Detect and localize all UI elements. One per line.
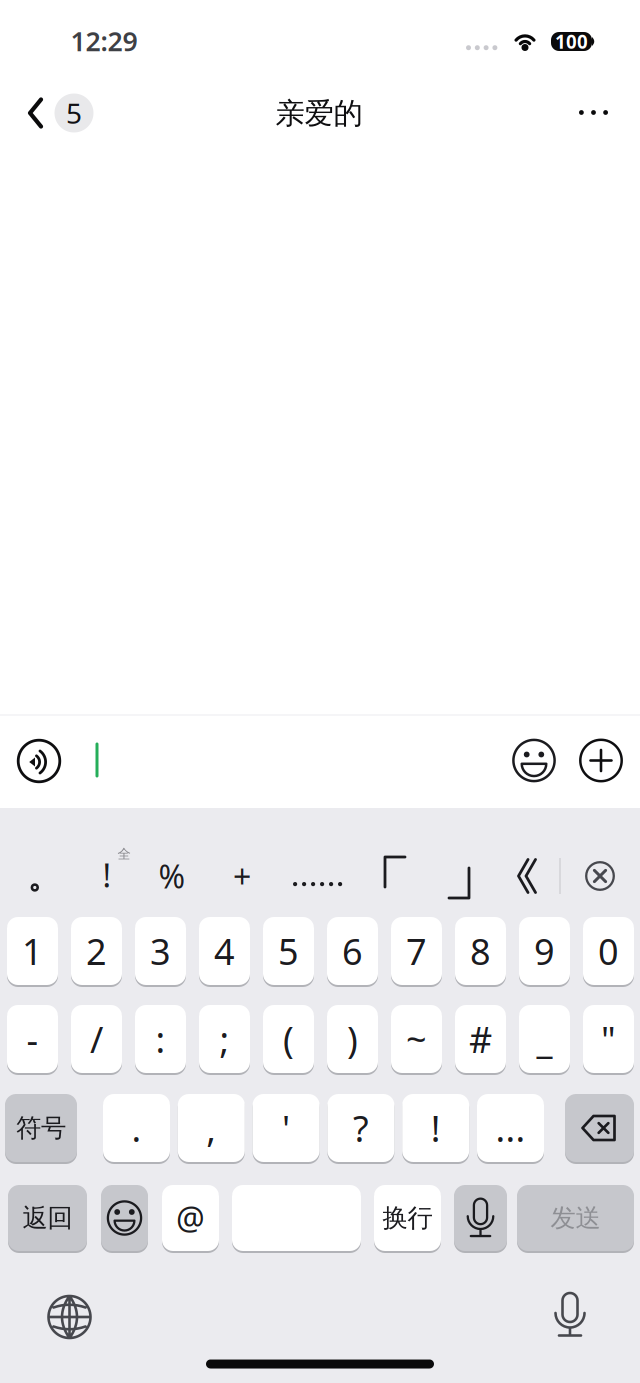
staticText: 12:29 [70,23,137,59]
button[interactable]: . [103,1094,170,1162]
staticText: ; [219,1015,229,1063]
button[interactable]: Back [26,93,93,132]
staticText: ~ [406,1015,427,1063]
button[interactable]: 2 [71,917,122,985]
staticText: ! [431,1104,441,1152]
button[interactable]: 1 [7,917,58,985]
staticText: 6 [342,927,363,975]
button[interactable]: 6 [327,917,378,985]
staticText: 1 [22,927,43,975]
button[interactable]: 。 [29,881,41,893]
staticText: / [90,1015,103,1063]
button[interactable]: " [583,1005,634,1073]
button[interactable]: 《 [516,858,538,894]
staticText: 9 [534,927,555,975]
staticText: % [158,855,185,897]
staticText: 8 [470,927,491,975]
staticText: 7 [406,927,427,975]
staticText: ' [282,1104,290,1152]
button[interactable]: ) [327,1005,378,1073]
staticText: @ [176,1197,205,1239]
button[interactable]: ? [327,1094,394,1162]
staticText: 2 [86,927,107,975]
button[interactable]: Voice input [16,738,62,784]
button[interactable]: Dismiss [584,860,616,892]
staticText: ( [283,1015,294,1063]
staticText: 5 [66,94,82,132]
button[interactable]: + [233,855,251,897]
button[interactable]: Delete [565,1094,634,1162]
staticText: . [131,1104,141,1152]
staticText: 换行 [382,1202,432,1233]
button[interactable]: ! [102,854,111,896]
button[interactable]: 符号 [5,1094,77,1162]
button[interactable]: Emoji [511,738,557,783]
button[interactable]: ' [253,1094,320,1162]
staticText: ) [347,1015,358,1063]
staticText: 5 [278,927,299,975]
staticText: ? [353,1104,369,1152]
button[interactable]: Dictate [454,1185,507,1251]
staticText: : [155,1015,165,1063]
staticText: 100 [555,29,588,54]
staticText: + [233,855,251,897]
button[interactable]: 4 [199,917,250,985]
button[interactable]: ... [477,1094,544,1162]
button[interactable]: 返回 [8,1185,87,1251]
staticText: , [206,1104,216,1152]
button[interactable]: Space [232,1185,361,1251]
staticText: 符号 [16,1112,66,1143]
staticText: 0 [598,927,619,975]
button[interactable]: - [7,1005,58,1073]
button[interactable]: 发送 [517,1185,634,1251]
button[interactable]: 7 [391,917,442,985]
button[interactable]: _ [519,1005,570,1073]
button[interactable]: # [455,1005,506,1073]
button[interactable]: …… [293,880,343,888]
staticText: ... [495,1104,525,1152]
button[interactable]: 8 [455,917,506,985]
button[interactable]: : [135,1005,186,1073]
staticText: _ [536,1015,552,1063]
button[interactable]: More actions [578,737,624,783]
button[interactable]: 「 [383,855,407,889]
button[interactable]: ! [402,1094,469,1162]
staticText: 全 [117,846,130,862]
button[interactable]: 换行 [374,1185,441,1251]
button[interactable]: Emoji [101,1185,148,1251]
button[interactable]: Next keyboard [46,1294,92,1340]
button[interactable]: 5 [263,917,314,985]
button[interactable]: ~ [391,1005,442,1073]
button[interactable]: More [579,107,609,117]
button[interactable]: ; [199,1005,250,1073]
button[interactable]: Dictation [553,1291,587,1339]
staticText: 3 [150,927,171,975]
button[interactable]: 」 [447,866,471,900]
button[interactable]: 3 [135,917,186,985]
staticText: 亲爱的 [275,95,362,131]
button[interactable]: / [71,1005,122,1073]
staticText: # [469,1015,492,1063]
button[interactable]: ( [263,1005,314,1073]
staticText: ! [102,854,111,896]
staticText: - [26,1015,38,1063]
staticText: 返回 [22,1202,72,1233]
staticText: 发送 [550,1202,600,1233]
button[interactable]: 0 [583,917,634,985]
button[interactable]: % [158,855,185,897]
button[interactable]: @ [162,1185,219,1251]
button[interactable]: , [178,1094,245,1162]
button[interactable]: 9 [519,917,570,985]
staticText: " [601,1015,616,1063]
staticText: 4 [214,927,235,975]
